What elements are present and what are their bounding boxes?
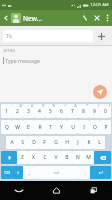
button[interactable]: Home: [38, 181, 75, 200]
button[interactable]: P: [100, 120, 111, 134]
button[interactable]: C: [39, 151, 50, 164]
staticText: 4: [38, 108, 41, 115]
button[interactable]: [34, 166, 79, 179]
button[interactable]: Back: [0, 10, 11, 26]
button[interactable]: ,: [23, 166, 34, 179]
staticText: Y: [60, 124, 63, 131]
button[interactable]: [94, 151, 111, 164]
staticText: P: [104, 124, 108, 131]
button[interactable]: Q: [1, 120, 12, 134]
button[interactable]: [1, 151, 17, 164]
button[interactable]: R: [34, 120, 45, 134]
staticText: (: [98, 104, 99, 108]
staticText: T: [49, 124, 52, 131]
staticText: V: [54, 154, 58, 161]
button[interactable]: Z: [17, 151, 28, 164]
button[interactable]: F: [39, 136, 50, 149]
button[interactable]: Recents: [75, 181, 112, 200]
button[interactable]: More options: [103, 10, 112, 26]
button[interactable]: 7: [67, 104, 78, 118]
button[interactable]: L: [94, 136, 105, 149]
staticText: #: [31, 104, 33, 108]
button[interactable]: 6: [56, 104, 67, 118]
button[interactable]: [90, 166, 111, 179]
button[interactable]: 123: [1, 166, 12, 179]
staticText: H: [65, 139, 69, 146]
button[interactable]: 1: [1, 104, 12, 118]
staticText: %: [52, 104, 55, 108]
button[interactable]: N: [72, 151, 83, 164]
staticText: @: [19, 104, 22, 108]
staticText: R: [38, 124, 42, 131]
staticText: I: [83, 124, 85, 131]
button[interactable]: V: [50, 151, 61, 164]
button[interactable]: W: [12, 120, 23, 134]
staticText: Z: [21, 154, 24, 161]
button[interactable]: Attach: [79, 10, 91, 26]
button[interactable]: Contact: [11, 13, 21, 23]
staticText: 123: [4, 170, 10, 175]
button[interactable]: 9: [89, 104, 100, 118]
staticText: 2: [16, 108, 19, 115]
button[interactable]: X: [28, 151, 39, 164]
button[interactable]: I: [78, 120, 89, 134]
staticText: $: [42, 104, 44, 108]
staticText: W: [15, 124, 20, 131]
staticText: .: [84, 170, 86, 176]
button[interactable]: Add recipient: [93, 28, 109, 44]
button[interactable]: 3: [23, 104, 34, 118]
staticText: ): [109, 104, 110, 108]
button[interactable]: 4: [34, 104, 45, 118]
button[interactable]: Y: [56, 120, 67, 134]
button[interactable]: A: [6, 136, 17, 149]
staticText: 5: [49, 108, 52, 115]
staticText: Q: [5, 124, 9, 131]
staticText: F: [43, 139, 46, 146]
staticText: To: [6, 33, 12, 40]
button[interactable]: O: [89, 120, 100, 134]
staticText: ^: [64, 104, 66, 108]
button[interactable]: Send: [93, 85, 107, 99]
staticText: S: [21, 139, 24, 146]
staticText: 0/160: [3, 48, 15, 54]
staticText: ,: [28, 170, 30, 176]
button[interactable]: G: [50, 136, 61, 149]
button[interactable]: H: [61, 136, 72, 149]
staticText: A: [10, 139, 14, 146]
button[interactable]: S: [17, 136, 28, 149]
staticText: New...: [23, 14, 42, 23]
button[interactable]: 0: [100, 104, 111, 118]
staticText: K: [87, 139, 91, 146]
staticText: 6: [60, 108, 63, 115]
staticText: Type message: [5, 57, 40, 64]
button[interactable]: J: [72, 136, 83, 149]
button[interactable]: Close: [91, 10, 103, 26]
button[interactable]: D: [28, 136, 39, 149]
staticText: G: [54, 139, 58, 146]
button[interactable]: B: [61, 151, 72, 164]
staticText: O: [93, 124, 97, 131]
button[interactable]: E: [23, 120, 34, 134]
button[interactable]: K: [83, 136, 94, 149]
staticText: 0: [104, 108, 107, 115]
staticText: 9: [93, 108, 96, 115]
button[interactable]: U: [67, 120, 78, 134]
button[interactable]: .: [79, 166, 90, 179]
button[interactable]: M: [83, 151, 94, 164]
staticText: C: [43, 154, 47, 161]
staticText: &: [74, 104, 77, 108]
button[interactable]: Back: [0, 181, 38, 200]
staticText: 12:01 AM: [90, 2, 109, 8]
staticText: E: [27, 124, 30, 131]
button[interactable]: 8: [78, 104, 89, 118]
button[interactable]: 5: [45, 104, 56, 118]
button[interactable]: To: [3, 30, 93, 42]
staticText: 7: [71, 108, 74, 115]
staticText: *: [86, 104, 88, 108]
button[interactable]: T: [45, 120, 56, 134]
staticText: 1: [5, 108, 8, 115]
staticText: M: [86, 154, 91, 161]
button[interactable]: 2: [12, 104, 23, 118]
button[interactable]: [12, 166, 23, 179]
staticText: 8: [82, 108, 85, 115]
